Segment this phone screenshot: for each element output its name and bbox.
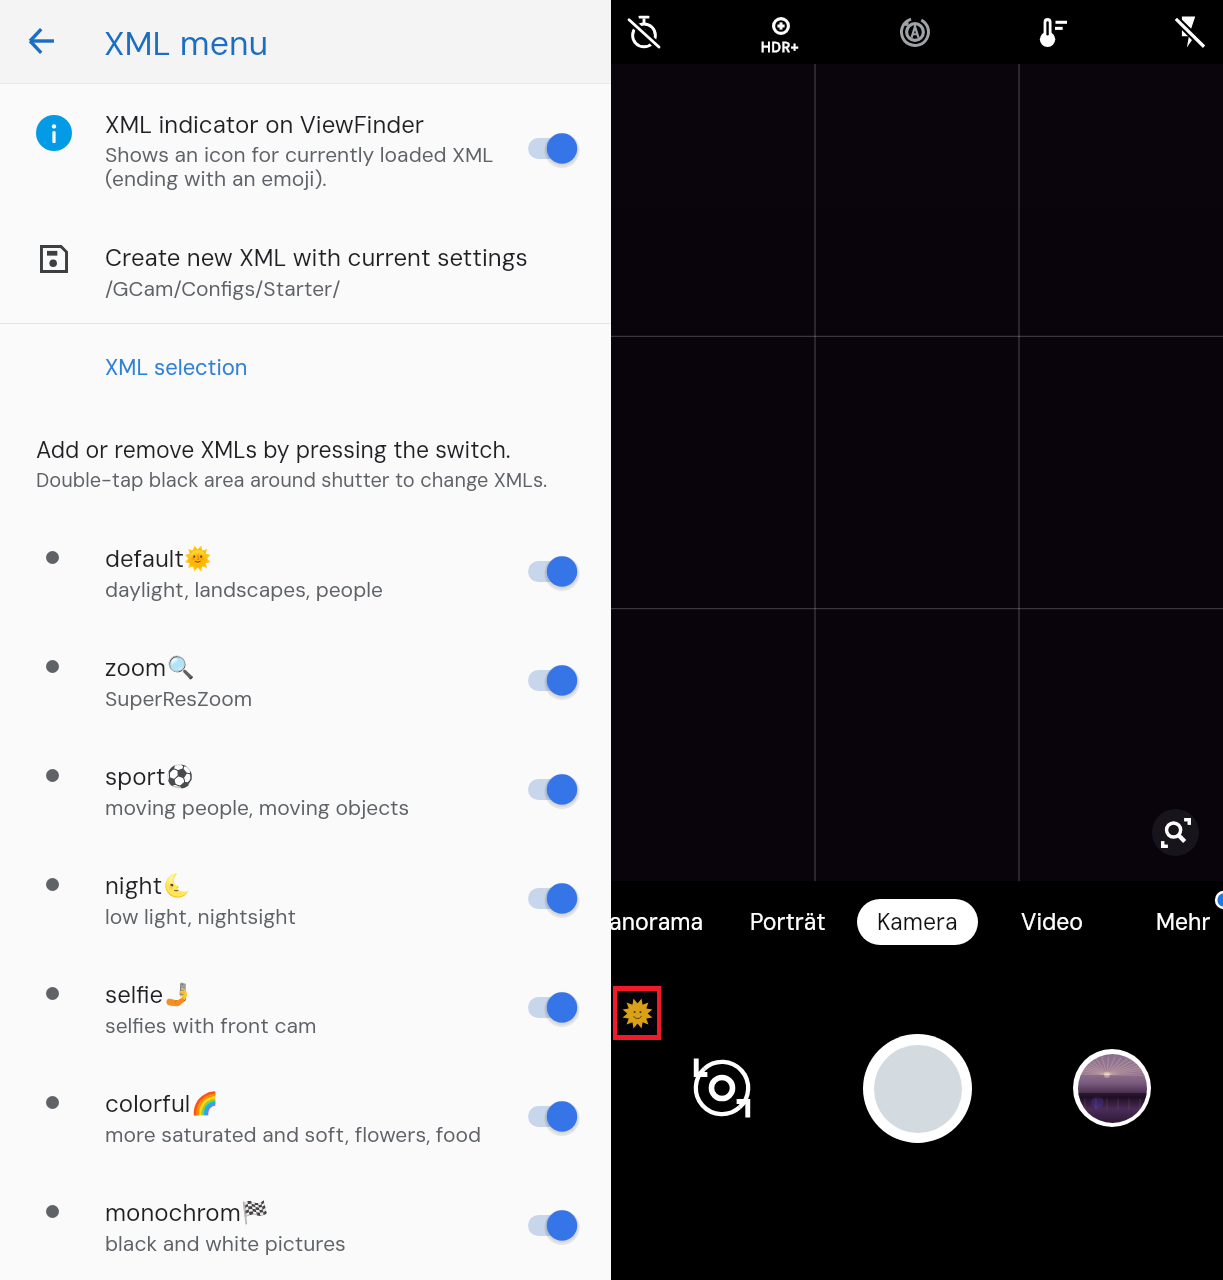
staticText: 🌈 — [191, 1091, 219, 1117]
button[interactable]: Toggle — [514, 124, 592, 174]
button[interactable] — [0, 228, 611, 308]
staticText: anorama — [609, 907, 704, 937]
button[interactable]: Shutter — [863, 1034, 972, 1143]
staticText: 🏁 — [241, 1200, 269, 1226]
staticText: 🤳 — [164, 982, 192, 1008]
button[interactable]: Toggle — [514, 765, 592, 815]
button[interactable]: Switch camera — [687, 1053, 757, 1123]
button[interactable] — [0, 527, 611, 627]
button[interactable]: Timer off — [612, 0, 676, 64]
staticText: Add or remove XMLs by pressing the switc… — [36, 435, 511, 465]
button[interactable] — [0, 745, 611, 845]
staticText: sport — [105, 761, 166, 792]
button[interactable] — [0, 636, 611, 736]
staticText: more saturated and soft, flowers, food — [105, 1121, 482, 1148]
staticText: 🌞 — [184, 546, 212, 572]
button[interactable]: Toggle — [514, 656, 592, 706]
button[interactable]: Gallery — [1073, 1049, 1151, 1127]
button[interactable]: Toggle — [514, 547, 592, 597]
button[interactable]: Toggle — [514, 1201, 592, 1251]
staticText: XML selection — [105, 353, 248, 382]
button[interactable]: anorama — [609, 898, 704, 946]
button[interactable]: Toggle — [514, 1092, 592, 1142]
staticText: 🔍 — [167, 655, 195, 681]
button[interactable] — [0, 1072, 611, 1172]
button[interactable]: Mehr — [1156, 898, 1211, 946]
staticText: /GCam/Configs/Starter/ — [105, 275, 341, 302]
button[interactable]: Toggle — [514, 874, 592, 924]
button[interactable]: Porträt — [750, 898, 826, 946]
button[interactable]: Flash off — [1157, 0, 1221, 64]
staticText: Porträt — [750, 907, 826, 937]
staticText: Video — [1021, 907, 1083, 937]
staticText: ⚽ — [166, 764, 194, 790]
staticText: Kamera — [877, 907, 958, 937]
staticText: night — [105, 870, 163, 901]
staticText: Mehr — [1156, 907, 1211, 937]
staticText: selfie — [105, 979, 164, 1010]
staticText: moving people, moving objects — [105, 794, 410, 821]
button[interactable]: Auto — [883, 0, 947, 64]
button[interactable]: Toggle — [514, 983, 592, 1033]
button[interactable]: Kamera — [857, 899, 978, 945]
staticText: XML menu — [104, 21, 269, 65]
staticText: black and white pictures — [105, 1230, 346, 1257]
staticText: zoom — [105, 652, 167, 683]
staticText: SuperResZoom — [105, 685, 253, 712]
staticText: daylight, landscapes, people — [105, 576, 383, 603]
button[interactable] — [0, 1181, 611, 1280]
button[interactable] — [95, 348, 275, 388]
staticText: Shows an icon for currently loaded XML (… — [105, 141, 494, 193]
staticText: monochrom — [105, 1197, 241, 1228]
button[interactable] — [0, 963, 611, 1063]
staticText: low light, nightsight — [105, 903, 297, 930]
staticText: XML indicator on ViewFinder — [105, 109, 425, 140]
staticText: selfies with front cam — [105, 1012, 317, 1039]
staticText: default — [105, 543, 184, 574]
staticText: colorful — [105, 1088, 191, 1119]
button[interactable] — [0, 854, 611, 954]
button[interactable] — [0, 92, 611, 212]
button[interactable]: HDR plus — [748, 0, 812, 64]
button[interactable]: Back — [18, 17, 66, 65]
staticText: HDR+ — [761, 38, 800, 56]
staticText: Double-tap black area around shutter to … — [36, 467, 548, 493]
staticText: 🌜 — [163, 873, 191, 899]
button[interactable]: Zoom — [1152, 809, 1199, 856]
button[interactable]: Video — [1021, 898, 1083, 946]
button[interactable]: White balance — [1023, 0, 1087, 64]
staticText: Create new XML with current settings — [105, 242, 528, 273]
